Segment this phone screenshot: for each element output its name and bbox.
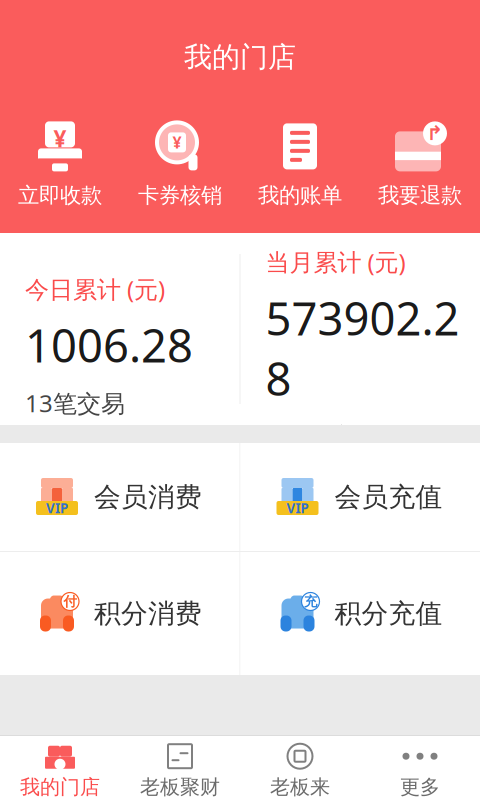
button[interactable]: VIP	[240, 443, 480, 551]
staticText: 老板来	[270, 775, 330, 799]
staticText: 我的门店	[20, 775, 100, 799]
button[interactable]: ↱	[360, 116, 480, 213]
staticText: 会员充值	[334, 481, 442, 513]
button[interactable]: VIP	[0, 443, 239, 551]
button[interactable]: 付	[0, 552, 239, 675]
button[interactable]: 老板聚财	[120, 736, 240, 800]
staticText: 会员消费	[94, 481, 202, 513]
staticText: 1006.28	[25, 315, 193, 375]
staticText: ¥	[172, 132, 181, 153]
staticText: 积分消费	[94, 597, 202, 630]
staticText: 119笔交易	[265, 420, 379, 452]
button[interactable]: 更多	[360, 736, 480, 800]
button[interactable]: ¥	[120, 116, 240, 213]
staticText: 我的账单	[258, 182, 342, 209]
staticText: 更多	[400, 775, 440, 799]
staticText: ↱	[426, 122, 443, 145]
staticText: 当月累计 (元)	[265, 246, 405, 278]
staticText: 卡券核销	[138, 182, 222, 209]
staticText: 付	[63, 593, 76, 610]
button[interactable]: 充	[240, 552, 480, 675]
staticText: ¥	[53, 123, 66, 153]
staticText: 积分充值	[334, 597, 442, 630]
staticText: 立即收款	[18, 182, 102, 209]
staticText: 充	[304, 593, 317, 610]
button[interactable]: 我的账单	[240, 116, 360, 213]
button[interactable]: 老板来	[240, 736, 360, 800]
staticText: VIP	[46, 499, 68, 517]
staticText: VIP	[286, 499, 308, 517]
staticText: 今日累计 (元)	[25, 273, 165, 305]
staticText: 老板聚财	[140, 775, 220, 799]
staticText: 我要退款	[378, 182, 462, 209]
staticText: 573902.28	[265, 288, 459, 408]
button[interactable]: ¥	[0, 116, 120, 213]
staticText: 我的门店	[184, 40, 296, 74]
button[interactable]: 我的门店	[0, 736, 120, 800]
staticText: 13笔交易	[25, 387, 125, 419]
